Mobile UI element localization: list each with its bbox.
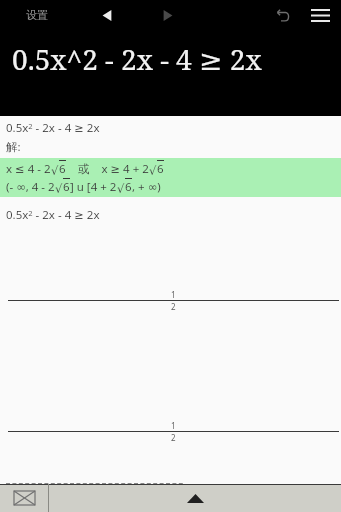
staticText: √ [149, 164, 157, 177]
staticText: 2 [171, 432, 176, 443]
button[interactable]: Menu [303, 0, 337, 30]
button[interactable]: Undo [267, 0, 297, 30]
staticText: 6 [63, 179, 70, 195]
staticText: 0.5x2 - 2x - 4 ≥ 2x [6, 207, 100, 223]
button[interactable]: Next [154, 2, 180, 28]
staticText: 或 x ≥ 4 + 2 [66, 161, 149, 177]
staticText: 0.5x^2 - 2x - 4 ≥ 2x [12, 40, 262, 78]
staticText: 6 [59, 161, 66, 177]
staticText: √ [51, 164, 59, 177]
staticText: √ [55, 182, 63, 195]
staticText: ] u [4 + 2 [70, 179, 117, 195]
staticText: √ [117, 182, 125, 195]
button[interactable]: Mail [0, 484, 48, 512]
staticText: 6 [157, 161, 164, 177]
staticText: 设置 [26, 8, 48, 22]
staticText: x ≤ 4 - 2 [6, 161, 51, 177]
button[interactable]: Expand [49, 484, 341, 512]
staticText: 2 [171, 301, 176, 312]
staticText: 6 [125, 179, 132, 195]
staticText: 解: [6, 139, 21, 155]
staticText: 1 [171, 289, 176, 300]
button[interactable]: Previous [94, 2, 120, 28]
staticText: 1 [171, 420, 176, 431]
staticText: (- ∞, 4 - 2 [6, 179, 55, 195]
staticText: 0.5x2 - 2x - 4 ≥ 2x [6, 120, 100, 136]
staticText: , + ∞) [132, 179, 161, 195]
button[interactable]: 设置 [22, 4, 52, 26]
